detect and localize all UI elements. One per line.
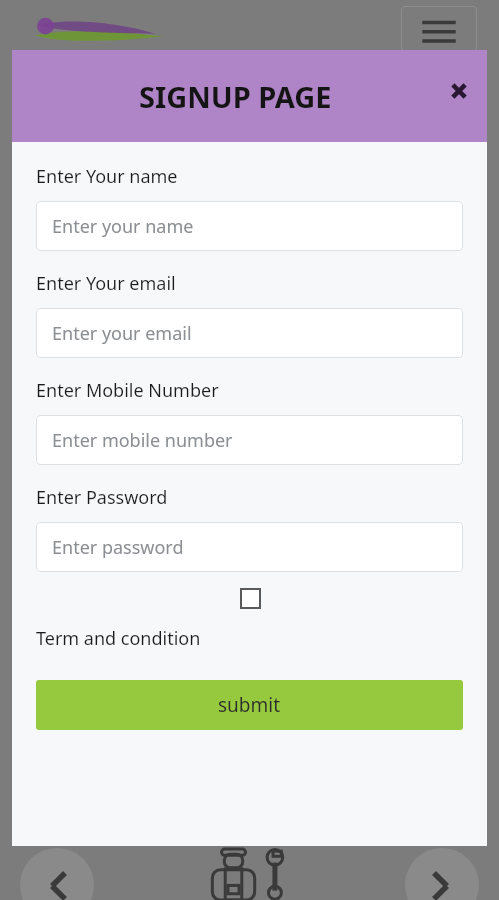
staticText: SIGNUP PAGE (139, 77, 332, 116)
staticText: Enter Your name (36, 164, 178, 189)
button[interactable]: submit (36, 680, 463, 730)
staticText: Enter mobile number (52, 428, 233, 453)
staticText: Enter your name (52, 214, 194, 239)
button[interactable]: Menu (401, 6, 477, 52)
button[interactable]: Enter your email (36, 308, 463, 358)
staticText: Enter password (52, 535, 184, 560)
button[interactable]: Enter mobile number (36, 415, 463, 465)
button[interactable]: Enter your name (36, 201, 463, 251)
button[interactable]: Close (442, 74, 476, 108)
button[interactable]: Term and condition (36, 626, 201, 651)
button[interactable]: Accept terms and conditions (240, 588, 261, 609)
button[interactable]: Enter password (36, 522, 463, 572)
staticText: Enter Mobile Number (36, 378, 219, 403)
staticText: Enter your email (52, 321, 192, 346)
staticText: Enter Your email (36, 271, 176, 296)
staticText: submit (218, 692, 281, 718)
staticText: Enter Password (36, 485, 168, 510)
